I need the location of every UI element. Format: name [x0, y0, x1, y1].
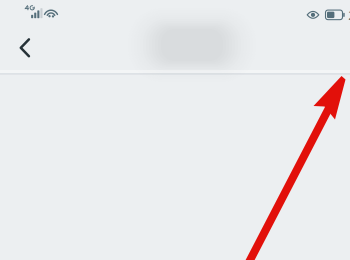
button[interactable]: Back	[5, 26, 45, 70]
staticText: 2	[348, 6, 350, 24]
